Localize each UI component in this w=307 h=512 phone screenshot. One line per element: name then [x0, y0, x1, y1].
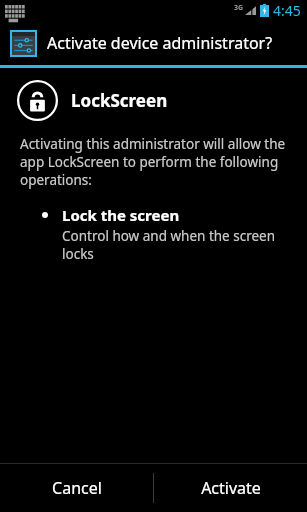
- staticText: 4:45: [273, 1, 301, 20]
- staticText: Control how and when the screen locks: [62, 227, 293, 263]
- staticText: Activating this administrator will allow…: [20, 135, 289, 189]
- staticText: LockScreen: [71, 89, 168, 112]
- staticText: Activate: [201, 477, 261, 499]
- button[interactable]: Cancel: [0, 464, 153, 512]
- staticText: 3G: [234, 3, 244, 13]
- staticText: Activate device administrator?: [47, 32, 273, 54]
- button[interactable]: Activate: [154, 464, 307, 512]
- staticText: Lock the screen: [62, 205, 180, 225]
- staticText: Cancel: [52, 477, 102, 499]
